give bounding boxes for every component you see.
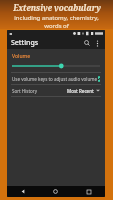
staticText: Extensive vocabulary	[13, 2, 101, 13]
button[interactable]: Recent apps	[72, 186, 105, 197]
staticText: Most Recent	[67, 88, 94, 94]
button[interactable]: Sort History	[7, 85, 105, 96]
button[interactable]: More options	[92, 38, 102, 48]
staticText: including anatomy, chemistry, words of	[5, 14, 108, 29]
button[interactable]	[7, 60, 105, 72]
staticText: Sort History	[12, 88, 37, 94]
staticText: Use volume keys to adjust audio volume	[12, 76, 98, 82]
staticText: Settings	[11, 38, 39, 48]
staticText: Volume	[12, 53, 31, 60]
button[interactable]: Use volume keys to adjust audio volume	[7, 73, 105, 84]
button[interactable]: Search	[82, 38, 92, 48]
button[interactable]: Home	[39, 186, 72, 197]
button[interactable]: Back	[7, 186, 39, 197]
